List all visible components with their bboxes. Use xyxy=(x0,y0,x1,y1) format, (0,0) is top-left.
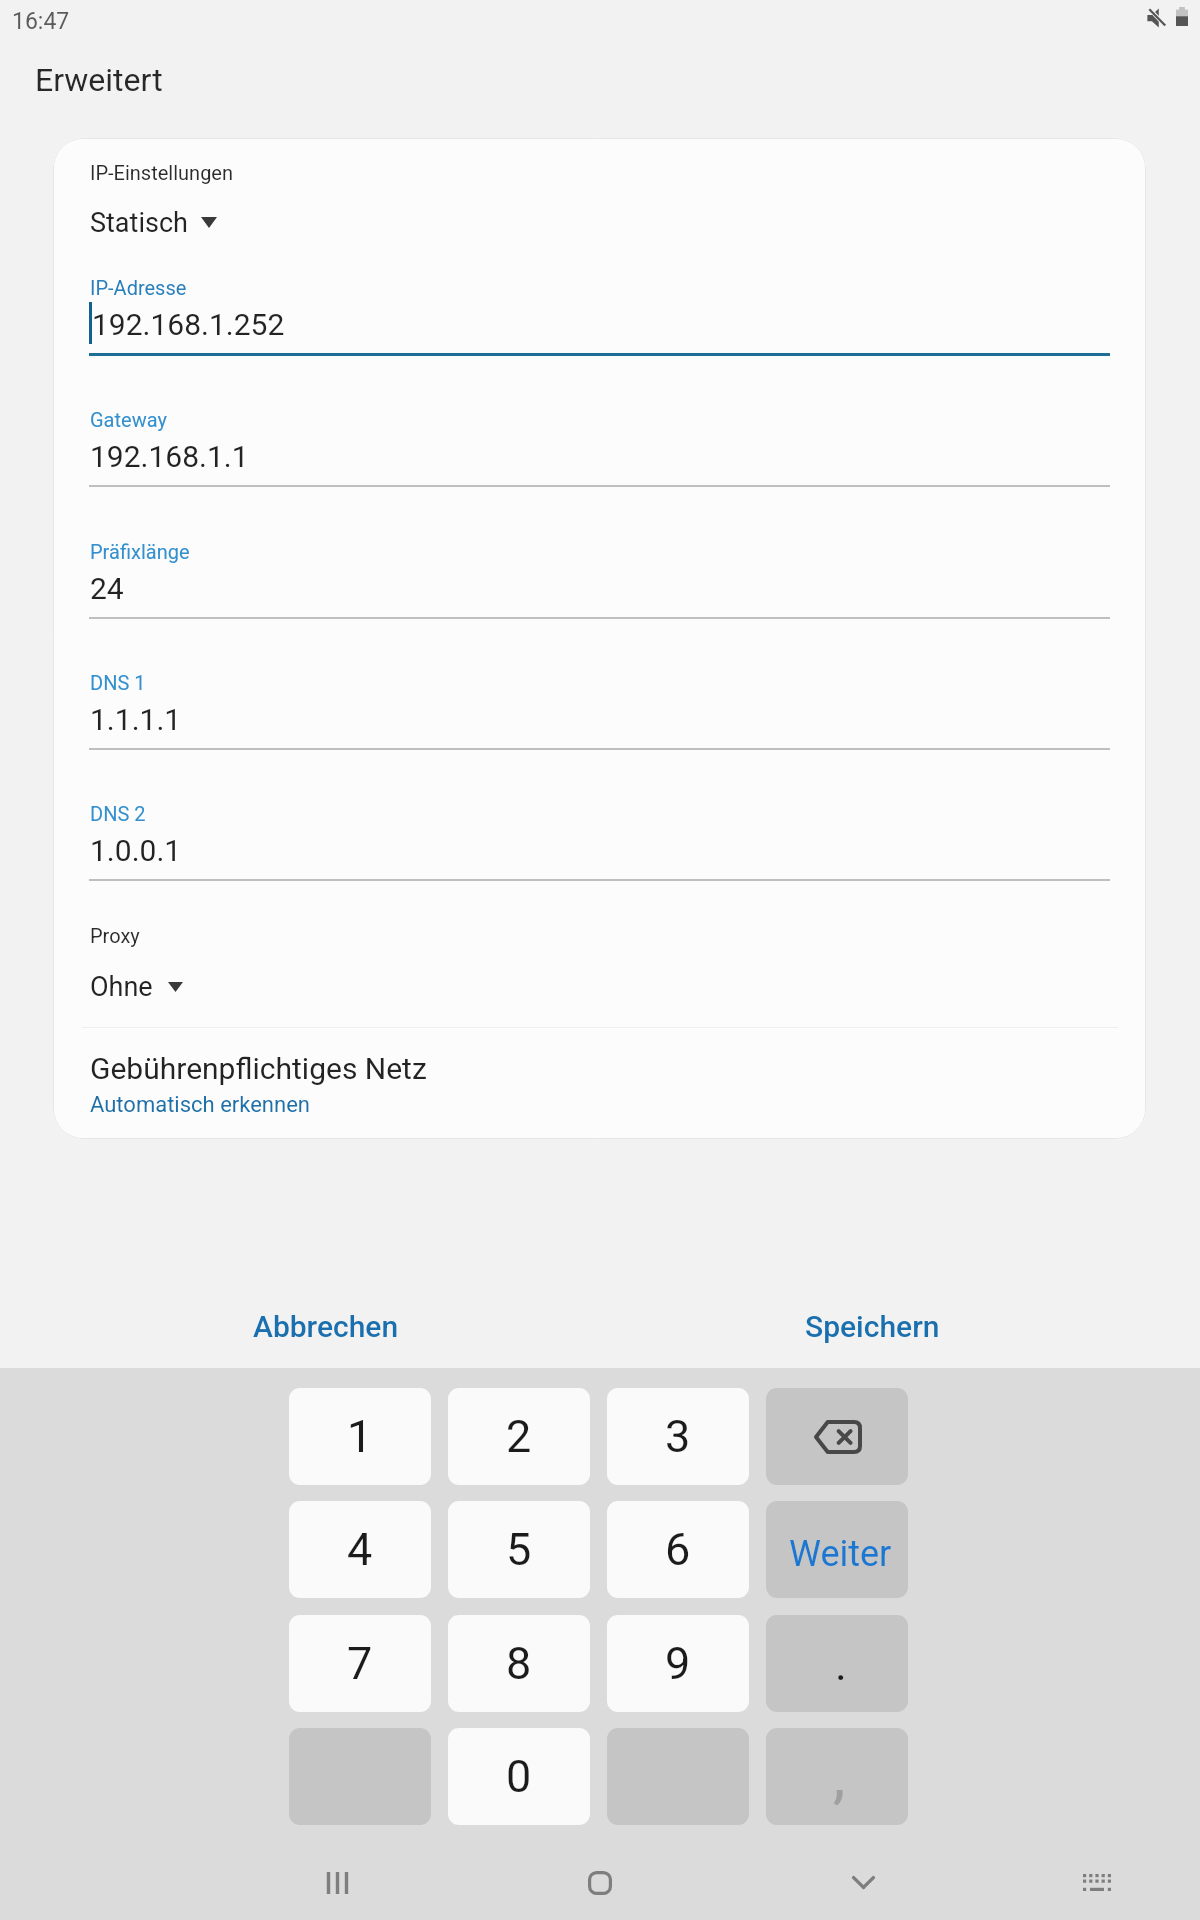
staticText: IP-Adresse xyxy=(90,276,187,299)
button[interactable]: 7 xyxy=(289,1615,431,1712)
button[interactable]: Punkt xyxy=(766,1615,908,1712)
staticText: 6 xyxy=(665,1523,691,1576)
button[interactable] xyxy=(74,797,1124,887)
button[interactable] xyxy=(74,666,1124,756)
staticText: Abbrechen xyxy=(253,1309,399,1344)
button[interactable] xyxy=(74,271,1124,361)
button[interactable]: Startbildschirm xyxy=(535,1845,665,1920)
button[interactable] xyxy=(733,1296,1013,1376)
button[interactable] xyxy=(186,1296,466,1376)
staticText: 7 xyxy=(347,1637,373,1690)
staticText: 192.168.1.1 xyxy=(90,439,249,474)
button[interactable] xyxy=(74,403,1124,493)
button[interactable] xyxy=(74,1042,1124,1134)
button[interactable]: Komma xyxy=(766,1728,908,1825)
button[interactable]: Tastatur wechseln xyxy=(1032,1845,1162,1920)
staticText: Proxy xyxy=(90,924,140,947)
staticText: 9 xyxy=(665,1637,691,1690)
staticText: , xyxy=(833,1739,846,1812)
button[interactable]: Zurück xyxy=(798,1845,928,1920)
staticText: Statisch xyxy=(90,207,188,239)
staticText: Weiter xyxy=(789,1533,892,1575)
button[interactable]: 4 xyxy=(289,1501,431,1598)
button[interactable] xyxy=(74,535,1124,625)
staticText: 192.168.1.252 xyxy=(92,307,285,342)
staticText: DNS 1 xyxy=(90,671,146,694)
staticText: 2 xyxy=(506,1410,532,1463)
button[interactable] xyxy=(74,152,374,242)
button[interactable]: Weiter xyxy=(766,1501,908,1598)
staticText: 24 xyxy=(90,571,124,606)
button[interactable]: 2 xyxy=(448,1388,590,1485)
staticText: 1.0.0.1 xyxy=(90,833,182,868)
staticText: Automatisch erkennen xyxy=(90,1092,310,1118)
staticText: 5 xyxy=(506,1523,532,1576)
staticText: Gebührenpflichtiges Netz xyxy=(90,1051,427,1086)
staticText: Erweitert xyxy=(35,61,163,99)
staticText: 1 xyxy=(347,1410,373,1463)
staticText: 0 xyxy=(506,1750,532,1803)
staticText: DNS 2 xyxy=(90,802,146,825)
button[interactable]: 9 xyxy=(607,1615,749,1712)
button[interactable]: Letzte Apps xyxy=(272,1845,402,1920)
button[interactable]: Rücktaste xyxy=(766,1388,908,1485)
staticText: Gateway xyxy=(90,408,167,431)
staticText: Speichern xyxy=(805,1309,940,1344)
button[interactable]: 5 xyxy=(448,1501,590,1598)
button[interactable]: 6 xyxy=(607,1501,749,1598)
staticText: 8 xyxy=(506,1637,532,1690)
staticText: 16:47 xyxy=(12,8,70,35)
staticText: IP-Einstellungen xyxy=(90,161,234,184)
button[interactable]: 1 xyxy=(289,1388,431,1485)
button[interactable]: 0 xyxy=(448,1728,590,1825)
staticText: 3 xyxy=(665,1410,691,1463)
button[interactable] xyxy=(74,918,374,1010)
button[interactable]: 8 xyxy=(448,1615,590,1712)
staticText: Ohne xyxy=(90,971,153,1003)
staticText: 1.1.1.1 xyxy=(90,702,182,737)
staticText: . xyxy=(835,1638,847,1691)
staticText: Präfixlänge xyxy=(90,540,190,563)
button[interactable]: 3 xyxy=(607,1388,749,1485)
staticText: 4 xyxy=(347,1523,373,1576)
